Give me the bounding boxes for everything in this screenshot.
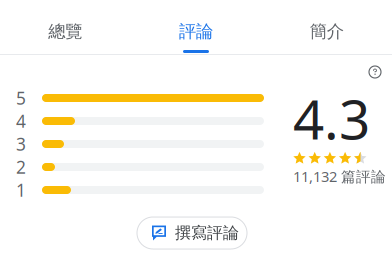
staticText: 5	[16, 86, 26, 109]
staticText: 4	[16, 109, 26, 132]
staticText: 2	[16, 155, 26, 178]
button[interactable]: 撰寫評論	[137, 217, 247, 249]
staticText: 評論	[179, 21, 213, 42]
staticText: 撰寫評論	[175, 223, 239, 243]
staticText: 11,132 篇評論	[293, 167, 386, 186]
button[interactable]: Help	[369, 66, 381, 78]
button[interactable]: 總覽	[0, 0, 131, 54]
staticText: 4.3	[293, 82, 370, 155]
button[interactable]: 評論	[131, 0, 261, 54]
staticText: 總覽	[48, 21, 82, 42]
staticText: 3	[16, 132, 26, 155]
staticText: 1	[16, 178, 26, 201]
staticText: 簡介	[310, 21, 344, 42]
button[interactable]: 簡介	[261, 0, 392, 54]
